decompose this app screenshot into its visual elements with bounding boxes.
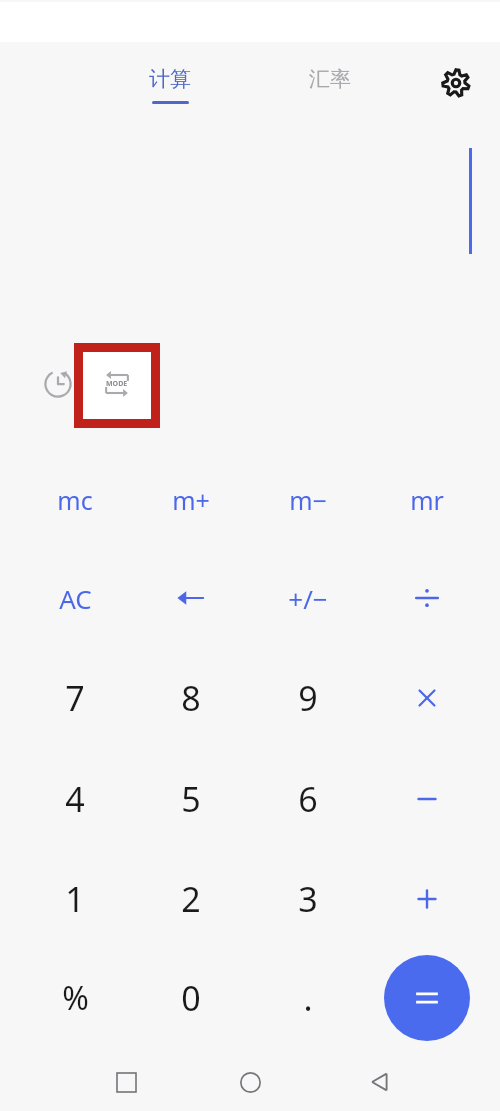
button[interactable]: Home xyxy=(229,1061,271,1103)
button[interactable]: m− xyxy=(253,455,363,545)
staticText: 7 xyxy=(65,675,85,721)
button[interactable]: 1 xyxy=(20,854,130,944)
button[interactable]: 0 xyxy=(136,953,246,1043)
button[interactable]: % xyxy=(20,953,130,1043)
button[interactable]: 6 xyxy=(253,754,363,844)
button[interactable]: Mode xyxy=(94,361,139,406)
button[interactable]: mc xyxy=(20,455,130,545)
staticText: 8 xyxy=(181,675,201,721)
staticText: AC xyxy=(59,581,92,616)
button[interactable]: m+ xyxy=(136,455,246,545)
button[interactable]: 5 xyxy=(136,754,246,844)
button[interactable]: 7 xyxy=(20,653,130,743)
button[interactable]: 汇率 xyxy=(290,66,370,116)
button[interactable]: Minus xyxy=(372,754,482,844)
button[interactable]: Backspace xyxy=(136,553,246,643)
button[interactable]: Back xyxy=(359,1061,401,1103)
staticText: 3 xyxy=(298,876,318,922)
staticText: mc xyxy=(57,483,93,517)
button[interactable]: Recents xyxy=(105,1061,147,1103)
staticText: 1 xyxy=(65,876,85,922)
button[interactable]: History xyxy=(35,361,80,406)
button[interactable]: 8 xyxy=(136,653,246,743)
staticText: +/− xyxy=(288,581,328,616)
button[interactable]: Equals xyxy=(384,955,470,1041)
button[interactable]: . xyxy=(253,953,363,1043)
button[interactable]: Plus xyxy=(372,854,482,944)
staticText: 9 xyxy=(298,675,318,721)
staticText: m− xyxy=(289,483,327,517)
button[interactable]: +/− xyxy=(253,553,363,643)
staticText: 5 xyxy=(181,776,201,822)
staticText: 计算 xyxy=(149,66,191,92)
staticText: 汇率 xyxy=(309,66,351,92)
staticText: MODE xyxy=(106,379,128,389)
button[interactable]: AC xyxy=(20,553,130,643)
staticText: . xyxy=(303,975,313,1021)
button[interactable]: Divide xyxy=(372,553,482,643)
button[interactable]: mr xyxy=(372,455,482,545)
button[interactable]: Multiply xyxy=(372,653,482,743)
staticText: m+ xyxy=(172,483,210,517)
button[interactable]: 4 xyxy=(20,754,130,844)
staticText: 2 xyxy=(181,876,201,922)
button[interactable]: Settings xyxy=(428,66,484,116)
staticText: % xyxy=(62,976,89,1020)
staticText: 6 xyxy=(298,776,318,822)
button[interactable]: 计算 xyxy=(130,66,210,116)
button[interactable]: 2 xyxy=(136,854,246,944)
staticText: 4 xyxy=(65,776,85,822)
staticText: 0 xyxy=(181,975,201,1021)
button[interactable]: 3 xyxy=(253,854,363,944)
button[interactable]: 9 xyxy=(253,653,363,743)
staticText: mr xyxy=(410,483,444,517)
